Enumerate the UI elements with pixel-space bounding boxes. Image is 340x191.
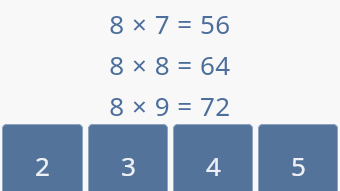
staticText: 8 × 9 = 72	[0, 88, 340, 123]
button[interactable]: 3	[88, 124, 168, 191]
staticText: 4	[206, 148, 221, 183]
staticText: 3	[121, 148, 136, 183]
staticText: 2	[35, 148, 50, 183]
button[interactable]: 4	[173, 124, 253, 191]
staticText: 5	[291, 148, 306, 183]
staticText: 8 × 7 = 56	[0, 6, 340, 41]
staticText: 8 × 8 = 64	[0, 47, 340, 82]
button[interactable]: 5	[258, 124, 338, 191]
button[interactable]: 2	[2, 124, 83, 191]
